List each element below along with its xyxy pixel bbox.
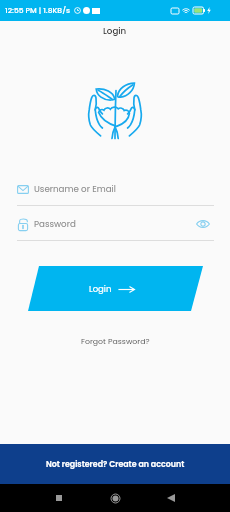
staticText: Login bbox=[103, 25, 127, 37]
button[interactable]: Forgot Password? bbox=[75, 334, 156, 349]
button[interactable]: Back bbox=[157, 484, 185, 512]
button[interactable]: Show password bbox=[192, 213, 214, 235]
button[interactable]: Username or Email bbox=[0, 177, 230, 201]
staticText: Password bbox=[34, 218, 76, 230]
staticText: Not registered? Create an account bbox=[46, 459, 185, 470]
staticText: Forgot Password? bbox=[81, 336, 150, 347]
staticText: Login bbox=[89, 283, 112, 295]
staticText: Username or Email bbox=[34, 183, 116, 195]
button[interactable]: Recents bbox=[45, 484, 73, 512]
button[interactable]: Not registered? Create an account bbox=[0, 444, 230, 484]
button[interactable]: Home bbox=[101, 484, 129, 512]
button[interactable]: Password bbox=[0, 212, 230, 236]
button[interactable] bbox=[0, 266, 230, 311]
staticText: 12:55 PM | 1.8KB/s bbox=[5, 5, 71, 16]
